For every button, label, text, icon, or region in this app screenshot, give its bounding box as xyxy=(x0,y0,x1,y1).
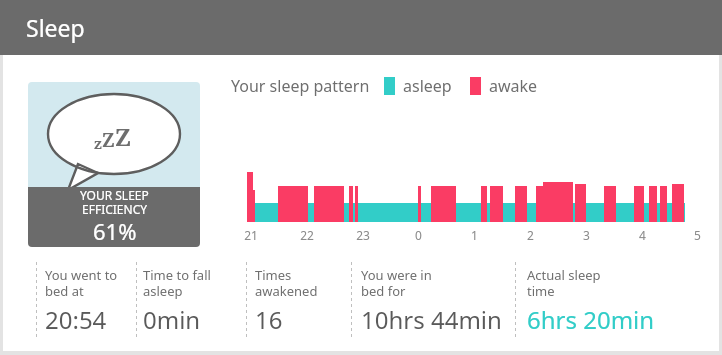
staticText: You were in xyxy=(361,266,432,284)
staticText: 4 xyxy=(639,227,646,243)
staticText: Times xyxy=(255,266,292,284)
staticText: EFFICIENCY xyxy=(82,201,148,217)
staticText: z xyxy=(94,133,102,153)
staticText: awakened xyxy=(255,282,318,300)
staticText: 6hrs 20min xyxy=(527,303,655,336)
staticText: Time to fall xyxy=(143,266,211,284)
staticText: 16 xyxy=(255,303,283,336)
staticText: 1 xyxy=(471,227,478,243)
staticText: Actual sleep xyxy=(527,266,601,284)
staticText: bed for xyxy=(361,282,406,300)
staticText: 3 xyxy=(583,227,590,243)
staticText: Z xyxy=(102,127,115,153)
staticText: 2 xyxy=(527,227,534,243)
staticText: 0 xyxy=(415,227,422,243)
button[interactable]: z xyxy=(28,82,200,247)
button[interactable]: Sleep xyxy=(0,0,722,55)
staticText: 22 xyxy=(300,227,314,243)
staticText: 61% xyxy=(93,216,137,244)
staticText: bed at xyxy=(45,282,84,300)
staticText: 20:54 xyxy=(45,303,107,336)
staticText: 5 xyxy=(694,227,701,243)
button[interactable]: 21 xyxy=(3,55,719,351)
staticText: YOUR SLEEP xyxy=(80,187,149,203)
staticText: 23 xyxy=(356,227,370,243)
staticText: You went to xyxy=(45,266,118,284)
staticText: 10hrs 44min xyxy=(361,303,502,336)
staticText: 21 xyxy=(244,227,258,243)
staticText: Sleep xyxy=(26,12,85,43)
staticText: asleep xyxy=(143,282,183,300)
staticText: Z xyxy=(115,120,132,153)
staticText: Your sleep pattern xyxy=(231,75,370,97)
staticText: time xyxy=(527,282,555,300)
staticText: asleep xyxy=(403,75,452,97)
staticText: 0min xyxy=(143,303,201,336)
staticText: awake xyxy=(489,75,538,97)
